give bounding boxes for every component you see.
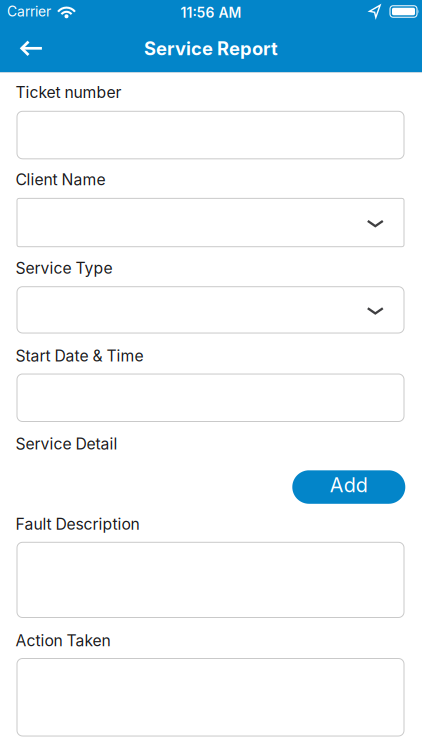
staticText: Ticket number bbox=[15, 83, 121, 102]
staticText: Client Name bbox=[15, 170, 105, 189]
staticText: Start Date & Time bbox=[15, 346, 143, 365]
staticText: 11:56 AM bbox=[180, 4, 241, 21]
staticText: Service Detail bbox=[15, 434, 117, 453]
staticText: Service Report bbox=[144, 37, 278, 59]
button[interactable]: Service Type bbox=[17, 287, 404, 333]
button[interactable]: Ticket number bbox=[17, 111, 404, 159]
staticText: Carrier bbox=[7, 3, 51, 20]
button[interactable]: Start Date & Time bbox=[17, 374, 404, 421]
staticText: Action Taken bbox=[15, 631, 110, 650]
button[interactable]: Action Taken bbox=[17, 658, 404, 736]
staticText: Fault Description bbox=[15, 515, 139, 534]
button[interactable]: Back bbox=[0, 23, 52, 69]
button[interactable]: Fault Description bbox=[17, 542, 404, 617]
button[interactable]: Add bbox=[292, 470, 405, 504]
button[interactable]: Client Name bbox=[17, 198, 404, 247]
staticText: Service Type bbox=[15, 259, 112, 278]
staticText: Add bbox=[330, 473, 368, 497]
